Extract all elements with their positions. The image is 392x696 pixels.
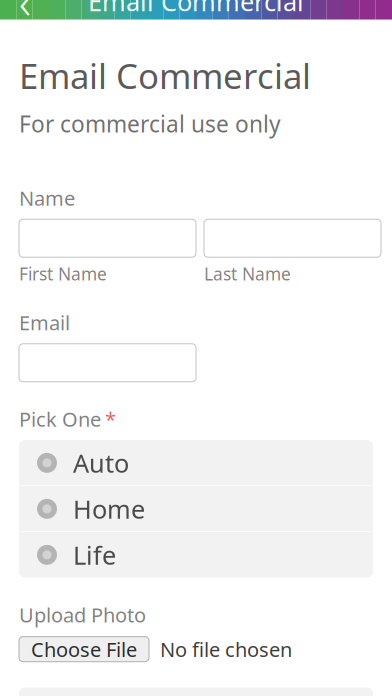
button[interactable]: Back: [0, 0, 50, 19]
staticText: Email Commercial: [19, 52, 311, 98]
staticText: Name: [19, 185, 75, 211]
staticText: Upload Photo: [19, 601, 146, 628]
staticText: Email: [19, 309, 70, 336]
staticText: Choose File: [31, 636, 137, 662]
staticText: *: [105, 406, 116, 432]
button[interactable]: Auto: [19, 440, 373, 485]
staticText: ‹: [19, 0, 31, 32]
staticText: Email Commercial: [88, 0, 304, 18]
staticText: Auto: [73, 446, 129, 480]
button[interactable]: Life: [19, 532, 373, 577]
staticText: No file chosen: [160, 636, 292, 662]
staticText: Pick One: [19, 406, 101, 432]
staticText: Home: [73, 492, 145, 526]
staticText: Life: [73, 538, 116, 572]
staticText: First Name: [19, 262, 107, 285]
staticText: Last Name: [204, 262, 291, 285]
button[interactable]: Home: [19, 486, 373, 531]
staticText: For commercial use only: [19, 109, 281, 139]
button[interactable]: Choose File: [19, 637, 149, 662]
